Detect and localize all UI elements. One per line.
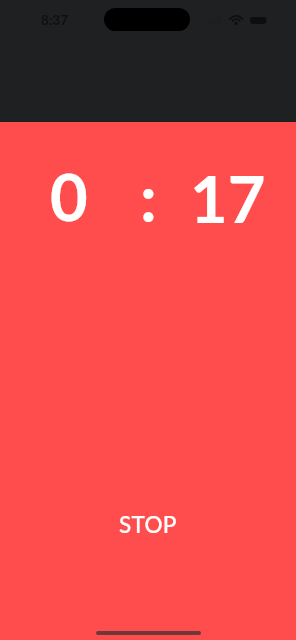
other: Home indicator: [96, 631, 201, 635]
staticText: 0: [50, 157, 88, 235]
staticText: :: [140, 158, 157, 236]
button[interactable]: STOP: [78, 499, 218, 551]
staticText: STOP: [119, 511, 177, 538]
staticText: 17: [190, 159, 266, 237]
staticText: 8:37: [41, 12, 68, 28]
other: Remaining time 0 minutes 17 seconds: [0, 157, 296, 237]
other: Signal, wifi and battery status: [204, 13, 268, 27]
